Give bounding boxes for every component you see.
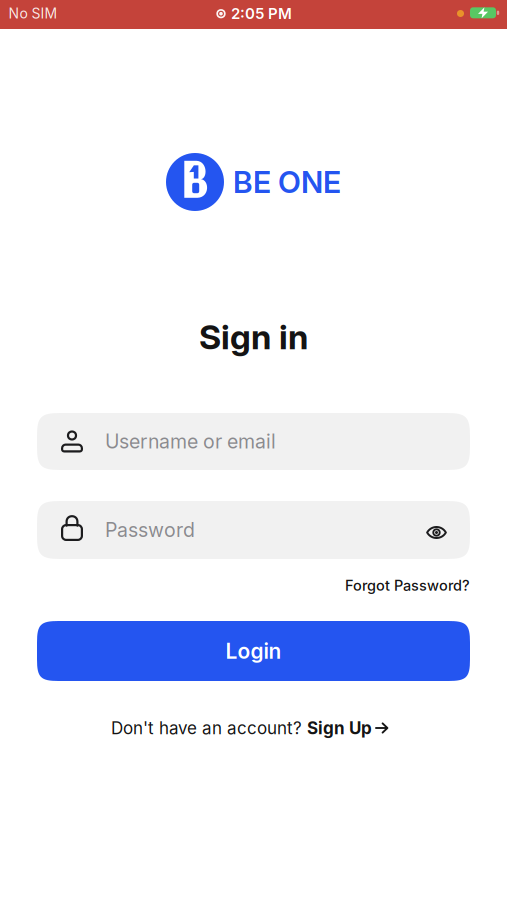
- staticText: Username or email: [105, 430, 276, 453]
- button[interactable]: Show password: [426, 512, 447, 548]
- button[interactable]: Password: [37, 501, 470, 559]
- button[interactable]: Sign Up: [307, 718, 389, 738]
- staticText: Don't have an account?: [111, 718, 302, 738]
- staticText: No SIM: [8, 5, 57, 22]
- staticText: Password: [105, 518, 195, 542]
- staticText: Sign Up: [307, 718, 372, 738]
- button[interactable]: Login: [37, 621, 470, 681]
- staticText: 2:05 PM: [231, 4, 292, 22]
- staticText: Login: [225, 638, 281, 664]
- staticText: BE ONE: [233, 164, 341, 200]
- staticText: Sign in: [199, 316, 308, 357]
- button[interactable]: Username or email: [37, 413, 470, 470]
- button[interactable]: Forgot Password?: [345, 577, 470, 594]
- staticText: Forgot Password?: [345, 577, 470, 594]
